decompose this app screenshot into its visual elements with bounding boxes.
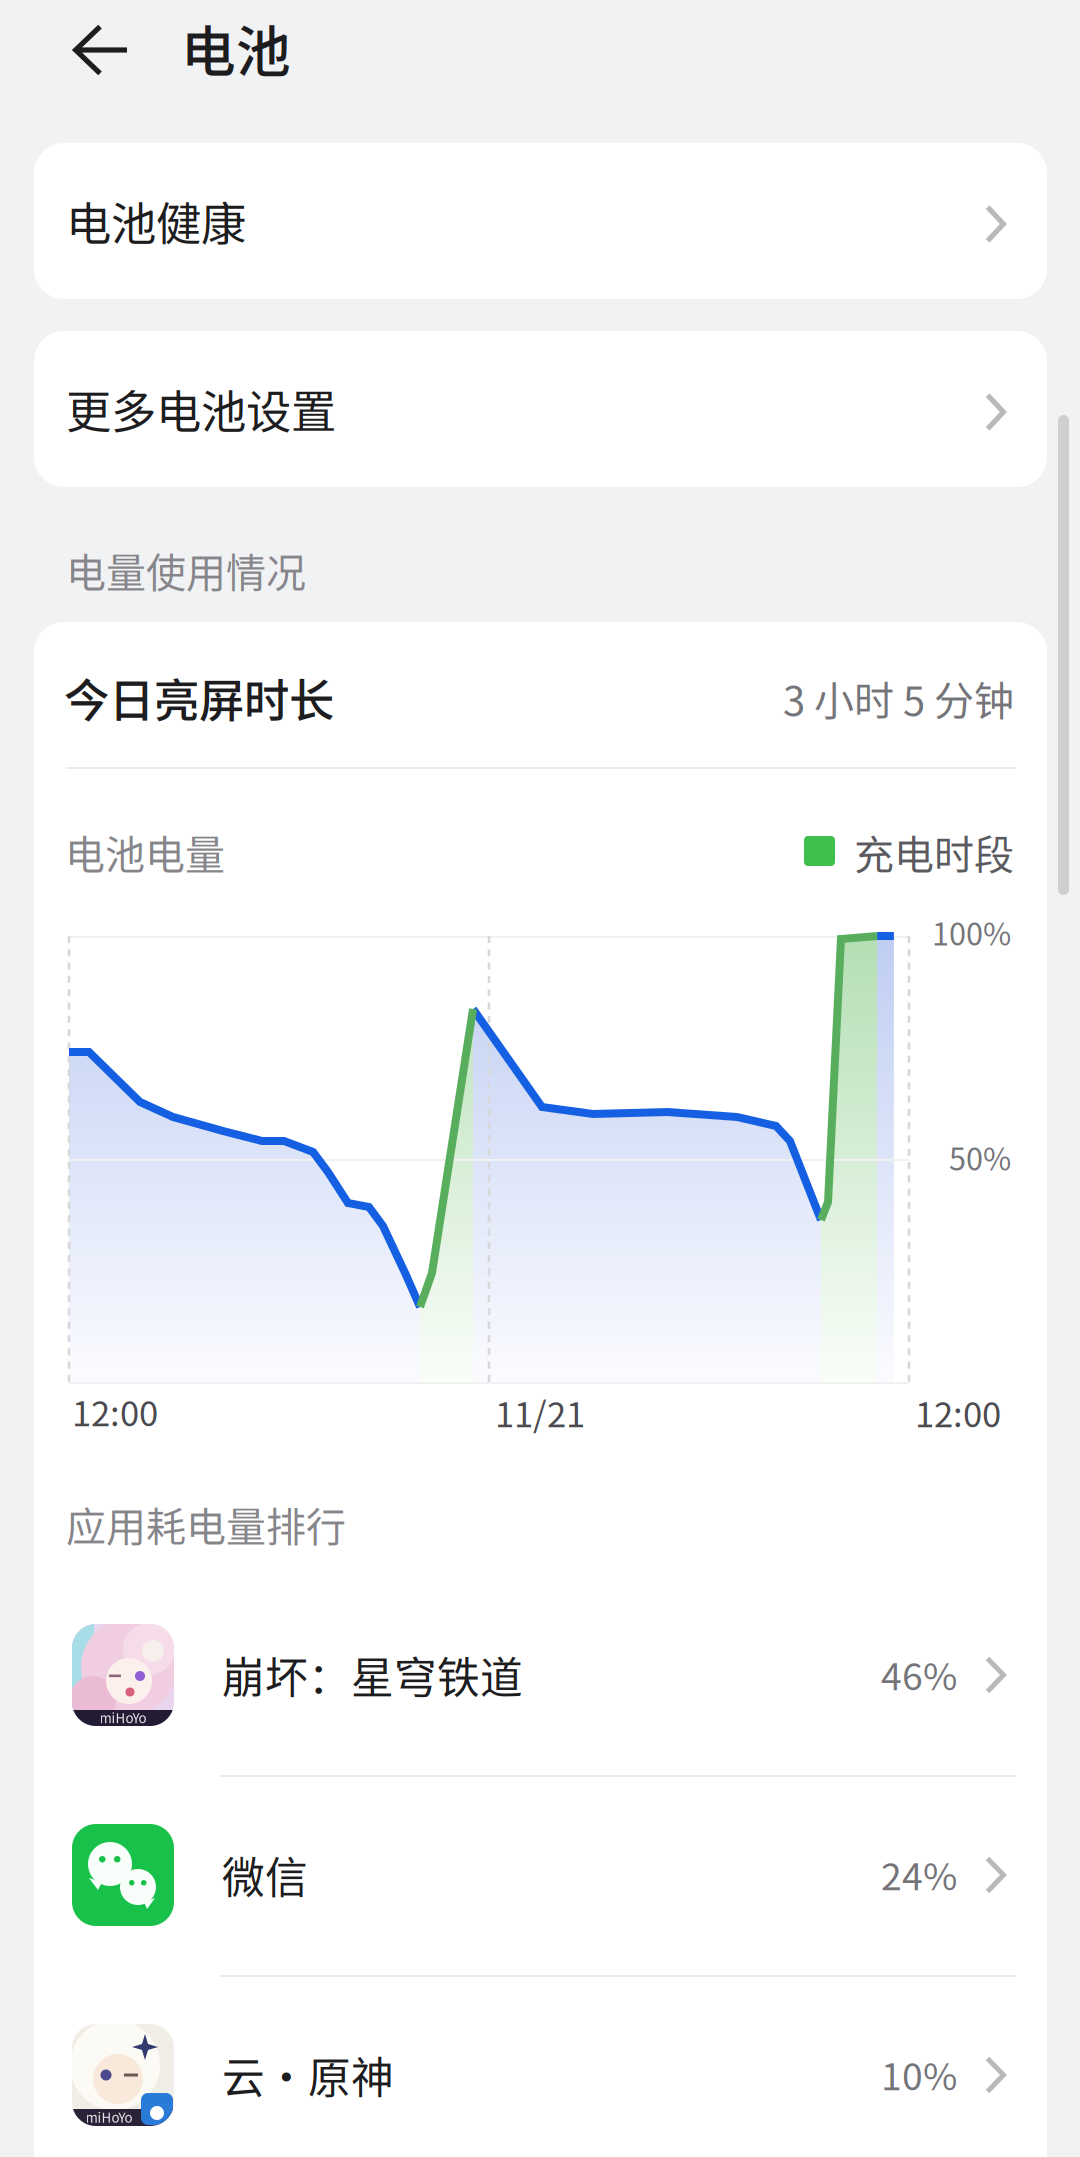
staticText: 100%: [932, 910, 1011, 954]
staticText: 应用耗电量排行: [66, 1495, 346, 1553]
staticText: miHoYo: [85, 2107, 132, 2127]
staticText: 电池健康: [66, 188, 246, 254]
staticText: 微信: [222, 1844, 308, 1906]
staticText: 12:00: [72, 1386, 158, 1436]
staticText: 电量使用情况: [66, 541, 306, 599]
staticText: 电池电量: [65, 823, 225, 881]
button[interactable]: 微信: [34, 1775, 1047, 1975]
staticText: 电池: [181, 8, 291, 87]
staticText: miHoYo: [99, 1708, 146, 1727]
staticText: 10%: [881, 2047, 957, 2101]
staticText: 更多电池设置: [66, 376, 336, 442]
staticText: 云·原神: [222, 2044, 394, 2106]
staticText: 12:00: [915, 1387, 1001, 1437]
staticText: 50%: [949, 1135, 1011, 1179]
button[interactable]: miHoYo: [34, 1975, 1047, 2157]
staticText: 46%: [881, 1647, 957, 1701]
button[interactable]: miHoYo: [34, 1575, 1047, 1775]
staticText: 今日亮屏时长: [64, 665, 334, 731]
staticText: 充电时段: [854, 823, 1014, 881]
button[interactable]: 更多电池设置: [34, 331, 1047, 487]
button[interactable]: 电池健康: [34, 143, 1047, 299]
staticText: 3 小时 5 分钟: [783, 669, 1014, 727]
button[interactable]: Back: [43, 0, 158, 100]
staticText: 24%: [881, 1847, 957, 1901]
staticText: 崩坏：星穹铁道: [222, 1644, 523, 1706]
staticText: 11/21: [495, 1387, 585, 1437]
